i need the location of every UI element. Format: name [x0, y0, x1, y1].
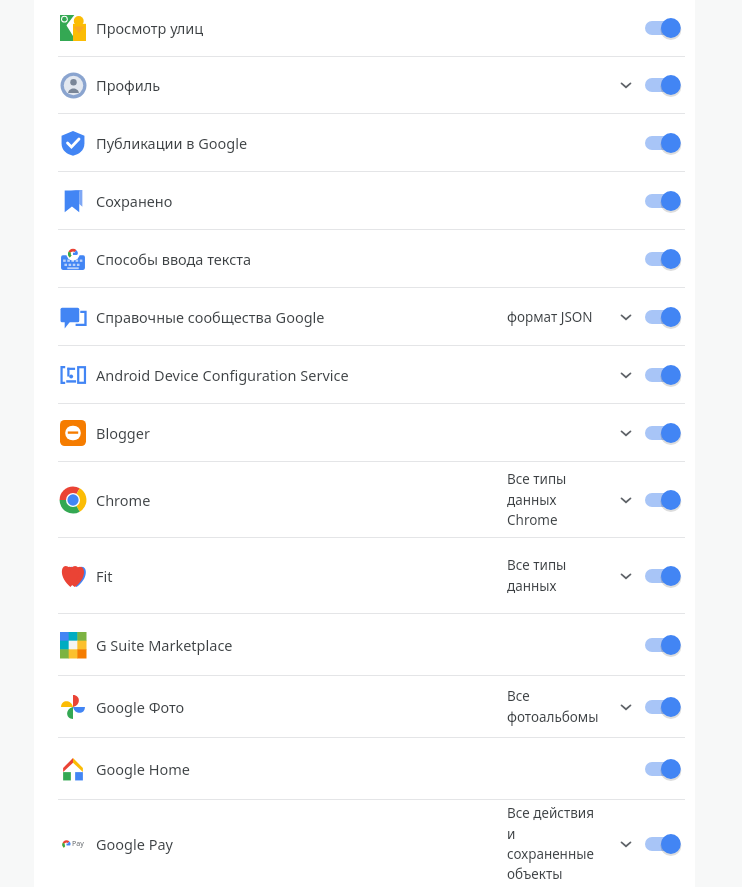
staticText: Справочные сообщества Google: [96, 307, 507, 327]
button[interactable]: Способы ввода текста: [34, 230, 695, 287]
staticText: Fit: [96, 566, 507, 586]
button[interactable]: Toggle: [645, 694, 685, 720]
button[interactable]: Toggle: [645, 304, 685, 330]
staticText: Профиль: [96, 75, 507, 95]
button[interactable]: Expand: [611, 404, 641, 461]
button[interactable]: Профиль: [34, 57, 695, 113]
staticText: Публикации в Google: [96, 133, 507, 153]
staticText: Сохранено: [96, 191, 507, 211]
staticText: Все типы данных Chrome: [507, 470, 567, 529]
staticText: Android Device Configuration Service: [96, 365, 507, 385]
button[interactable]: Toggle: [645, 188, 685, 214]
button[interactable]: Справочные сообщества Google: [34, 288, 695, 345]
button[interactable]: Blogger: [34, 404, 695, 461]
button[interactable]: Toggle: [645, 130, 685, 156]
staticText: Все действия и сохраненные объекты: [507, 804, 594, 883]
button[interactable]: Toggle: [645, 15, 685, 41]
button[interactable]: Toggle: [645, 487, 685, 513]
staticText: Blogger: [96, 423, 507, 443]
staticText: Google Home: [96, 759, 507, 779]
button[interactable]: Toggle: [645, 420, 685, 446]
button[interactable]: Toggle: [645, 831, 685, 857]
button[interactable]: Expand: [611, 676, 641, 737]
button[interactable]: Toggle: [645, 246, 685, 272]
button[interactable]: Toggle: [645, 756, 685, 782]
button[interactable]: Просмотр улиц: [34, 0, 695, 56]
button[interactable]: Android Device Configuration Service: [34, 346, 695, 403]
staticText: Способы ввода текста: [96, 249, 507, 269]
button[interactable]: Expand: [611, 57, 641, 113]
button[interactable]: Сохранено: [34, 172, 695, 229]
staticText: G Suite Marketplace: [96, 635, 507, 655]
button[interactable]: Chrome: [34, 462, 695, 537]
button[interactable]: Expand: [611, 346, 641, 403]
staticText: Pay: [72, 839, 84, 849]
button[interactable]: Pay: [34, 800, 695, 887]
button[interactable]: Публикации в Google: [34, 114, 695, 171]
button[interactable]: Expand: [611, 288, 641, 345]
staticText: Chrome: [96, 490, 507, 510]
button[interactable]: Expand: [611, 538, 641, 613]
button[interactable]: Google Home: [34, 738, 695, 799]
staticText: Google Фото: [96, 697, 507, 717]
button[interactable]: Expand: [611, 462, 641, 537]
button[interactable]: Toggle: [645, 362, 685, 388]
button[interactable]: Fit: [34, 538, 695, 613]
staticText: формат JSON: [507, 308, 593, 326]
button[interactable]: Expand: [611, 800, 641, 887]
staticText: Все типы данных: [507, 556, 567, 595]
staticText: Просмотр улиц: [96, 18, 507, 38]
button[interactable]: G Suite Marketplace: [34, 614, 695, 675]
button[interactable]: Google Фото: [34, 676, 695, 737]
button[interactable]: Toggle: [645, 72, 685, 98]
button[interactable]: Toggle: [645, 632, 685, 658]
staticText: Google Pay: [96, 834, 507, 854]
staticText: Все фотоальбомы: [507, 687, 599, 726]
button[interactable]: Toggle: [645, 563, 685, 589]
